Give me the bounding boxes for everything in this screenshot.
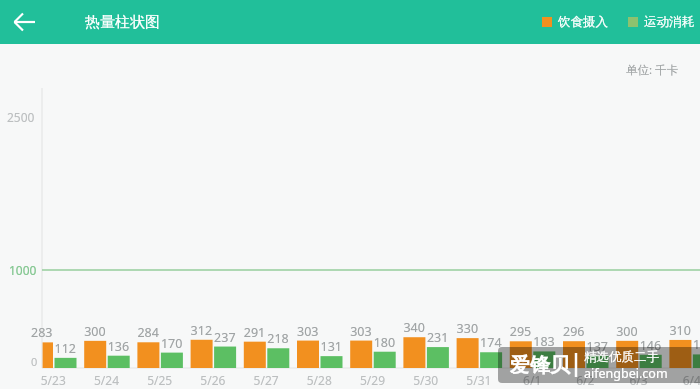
- button[interactable]: Back: [0, 0, 44, 44]
